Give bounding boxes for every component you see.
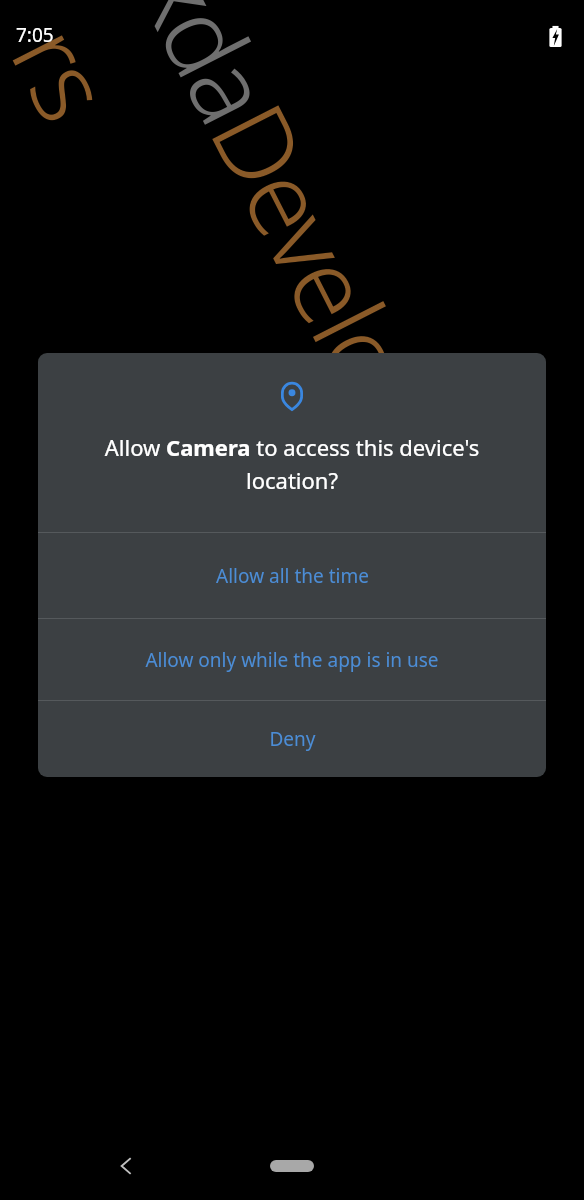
- staticText: Allow all the time: [216, 563, 369, 589]
- button[interactable]: Allow only while the app is in use: [38, 619, 546, 700]
- button[interactable]: Back: [100, 1140, 152, 1192]
- staticText: Deny: [269, 726, 316, 752]
- staticText: Allow only while the app is in use: [145, 647, 439, 673]
- button[interactable]: Home: [249, 1147, 335, 1185]
- button[interactable]: Deny: [38, 701, 546, 777]
- staticText: 7:05: [16, 22, 54, 48]
- other: Location: [280, 381, 304, 411]
- staticText: xdaDevelopers: [0, 0, 499, 587]
- button[interactable]: Allow all the time: [38, 533, 546, 618]
- staticText: Allow Camera to access this device's loc…: [58, 432, 526, 495]
